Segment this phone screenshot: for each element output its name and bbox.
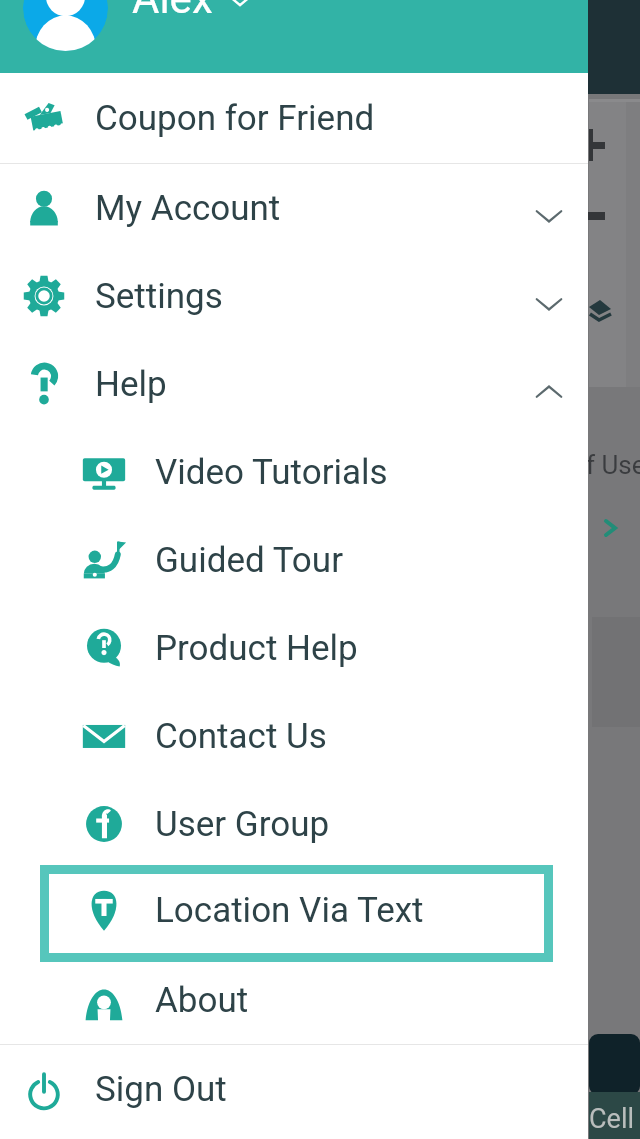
- button[interactable]: Location Via Text: [0, 868, 588, 956]
- button[interactable]: Help: [0, 340, 588, 428]
- staticText: Settings: [95, 276, 223, 317]
- staticText: Alex: [132, 0, 213, 23]
- button[interactable]: Coupon for Friend: [0, 73, 588, 163]
- button[interactable]: Contact Us: [0, 692, 588, 780]
- staticText: Product Help: [155, 628, 358, 669]
- staticText: My Account: [95, 188, 281, 229]
- staticText: Video Tutorials: [155, 452, 388, 493]
- button[interactable]: Product Help: [0, 604, 588, 692]
- button[interactable]: User Group: [0, 780, 588, 868]
- staticText: User Group: [155, 804, 330, 845]
- staticText: Help: [95, 364, 167, 405]
- staticText: Contact Us: [155, 716, 327, 757]
- staticText: Location Via Text: [155, 890, 424, 931]
- staticText: f Use: [586, 450, 640, 480]
- staticText: Coupon for Friend: [95, 98, 375, 139]
- other: Switch account: [224, 0, 256, 16]
- staticText: Location Via Text: [155, 892, 424, 933]
- staticText: Cell: [589, 1103, 635, 1135]
- staticText: Guided Tour: [155, 540, 343, 581]
- staticText: Sign Out: [95, 1069, 227, 1110]
- other: Profile photo: [0, 0, 588, 73]
- staticText: About: [155, 980, 249, 1021]
- button[interactable]: Sign Out: [0, 1045, 588, 1133]
- button[interactable]: Guided Tour: [0, 516, 588, 604]
- button[interactable]: Location Via Text: [0, 866, 588, 954]
- button[interactable]: Video Tutorials: [0, 428, 588, 516]
- button[interactable]: About: [0, 956, 588, 1044]
- button[interactable]: Settings: [0, 252, 588, 340]
- button[interactable]: My Account: [0, 164, 588, 252]
- button[interactable]: Profile photo: [0, 0, 588, 73]
